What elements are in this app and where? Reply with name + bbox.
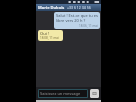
- staticText: 18:08, 11 mai: [40, 36, 59, 40]
- button[interactable]: Oui !: [38, 30, 63, 41]
- staticText: Salut ! Est-ce que tu es libre vers 20 h…: [56, 13, 98, 23]
- staticText: 18:06, 11 mai: [79, 24, 98, 28]
- staticText: Marie Dubois: [38, 5, 65, 10]
- staticText: Saisissez un message: [40, 91, 81, 96]
- staticText: Oui !: [40, 31, 49, 36]
- button[interactable]: Salut ! Est-ce que tu es libre vers 20 h…: [54, 12, 100, 29]
- button[interactable]: Saisissez un message: [38, 89, 88, 98]
- button[interactable]: Marie Dubois: [36, 4, 101, 11]
- button[interactable]: Envoyer: [90, 89, 99, 98]
- staticText: +33 6 12 34 56: [67, 5, 91, 10]
